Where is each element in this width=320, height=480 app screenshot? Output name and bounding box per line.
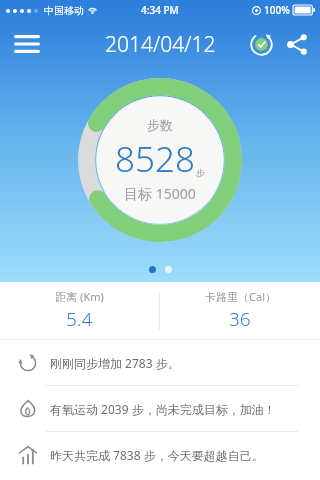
staticText: 卡路里（Cal） [205,289,276,304]
button[interactable]: 距离 (Km) [0,282,159,339]
staticText: 距离 (Km) [55,289,104,304]
button[interactable]: Activity [0,386,320,431]
button[interactable]: Sync [0,340,320,385]
staticText: 中国移动 [44,4,84,17]
other: Sync [18,353,38,373]
staticText: 目标 15000 [124,184,196,203]
button[interactable]: Menu [6,23,48,65]
other: Activity [18,399,38,419]
staticText: 刚刚同步增加 2783 步。 [50,355,180,371]
staticText: 昨天共完成 7838 步，今天要超越自己。 [50,447,264,463]
button[interactable]: Share [280,27,314,61]
button[interactable]: History [0,432,320,477]
button[interactable]: 卡路里（Cal） [160,282,320,339]
other: History [18,445,38,465]
staticText: 8528 [115,135,195,183]
staticText: 步 [196,167,205,178]
staticText: 4:34 PM [141,3,179,17]
staticText: 步数 [147,117,173,133]
staticText: 有氧运动 2039 步，尚未完成目标，加油！ [50,401,276,417]
staticText: 2014/04/12 [105,30,216,59]
staticText: 100% [264,3,290,17]
button[interactable]: Sync [244,27,278,61]
staticText: 5.4 [66,306,93,332]
staticText: 36 [229,306,251,332]
